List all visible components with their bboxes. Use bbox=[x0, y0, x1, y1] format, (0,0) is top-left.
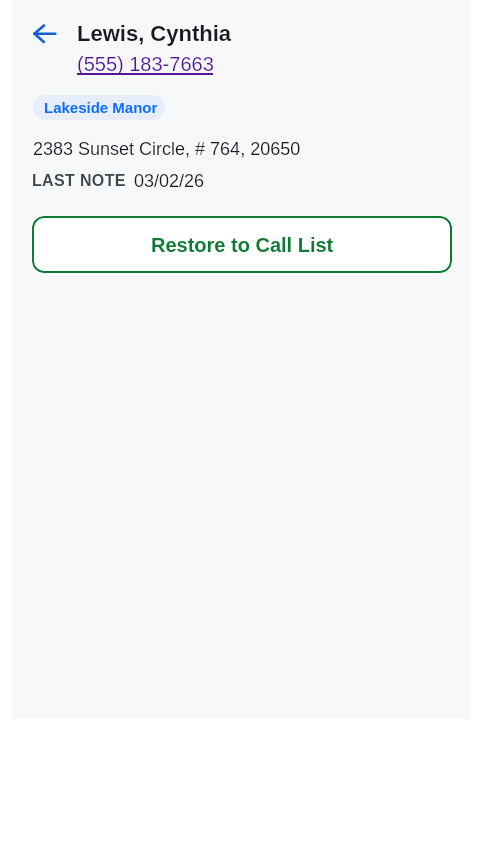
staticText: Lewis, Cynthia bbox=[77, 21, 232, 46]
staticText: (555) 183-7663 bbox=[77, 53, 214, 75]
button[interactable]: Back bbox=[29, 19, 61, 51]
staticText: 2383 Sunset Circle, # 764, 20650 bbox=[33, 139, 301, 159]
button[interactable]: (555) 183-7663 bbox=[76, 53, 214, 77]
staticText: LAST NOTE bbox=[32, 172, 126, 190]
staticText: Restore to Call List bbox=[151, 234, 334, 256]
button[interactable]: Lewis, Cynthia bbox=[77, 19, 232, 44]
button[interactable]: Lakeside Manor bbox=[33, 95, 165, 120]
button[interactable]: Restore to Call List bbox=[32, 216, 452, 273]
staticText: Lakeside Manor bbox=[44, 99, 158, 116]
staticText: 03/02/26 bbox=[134, 171, 205, 191]
